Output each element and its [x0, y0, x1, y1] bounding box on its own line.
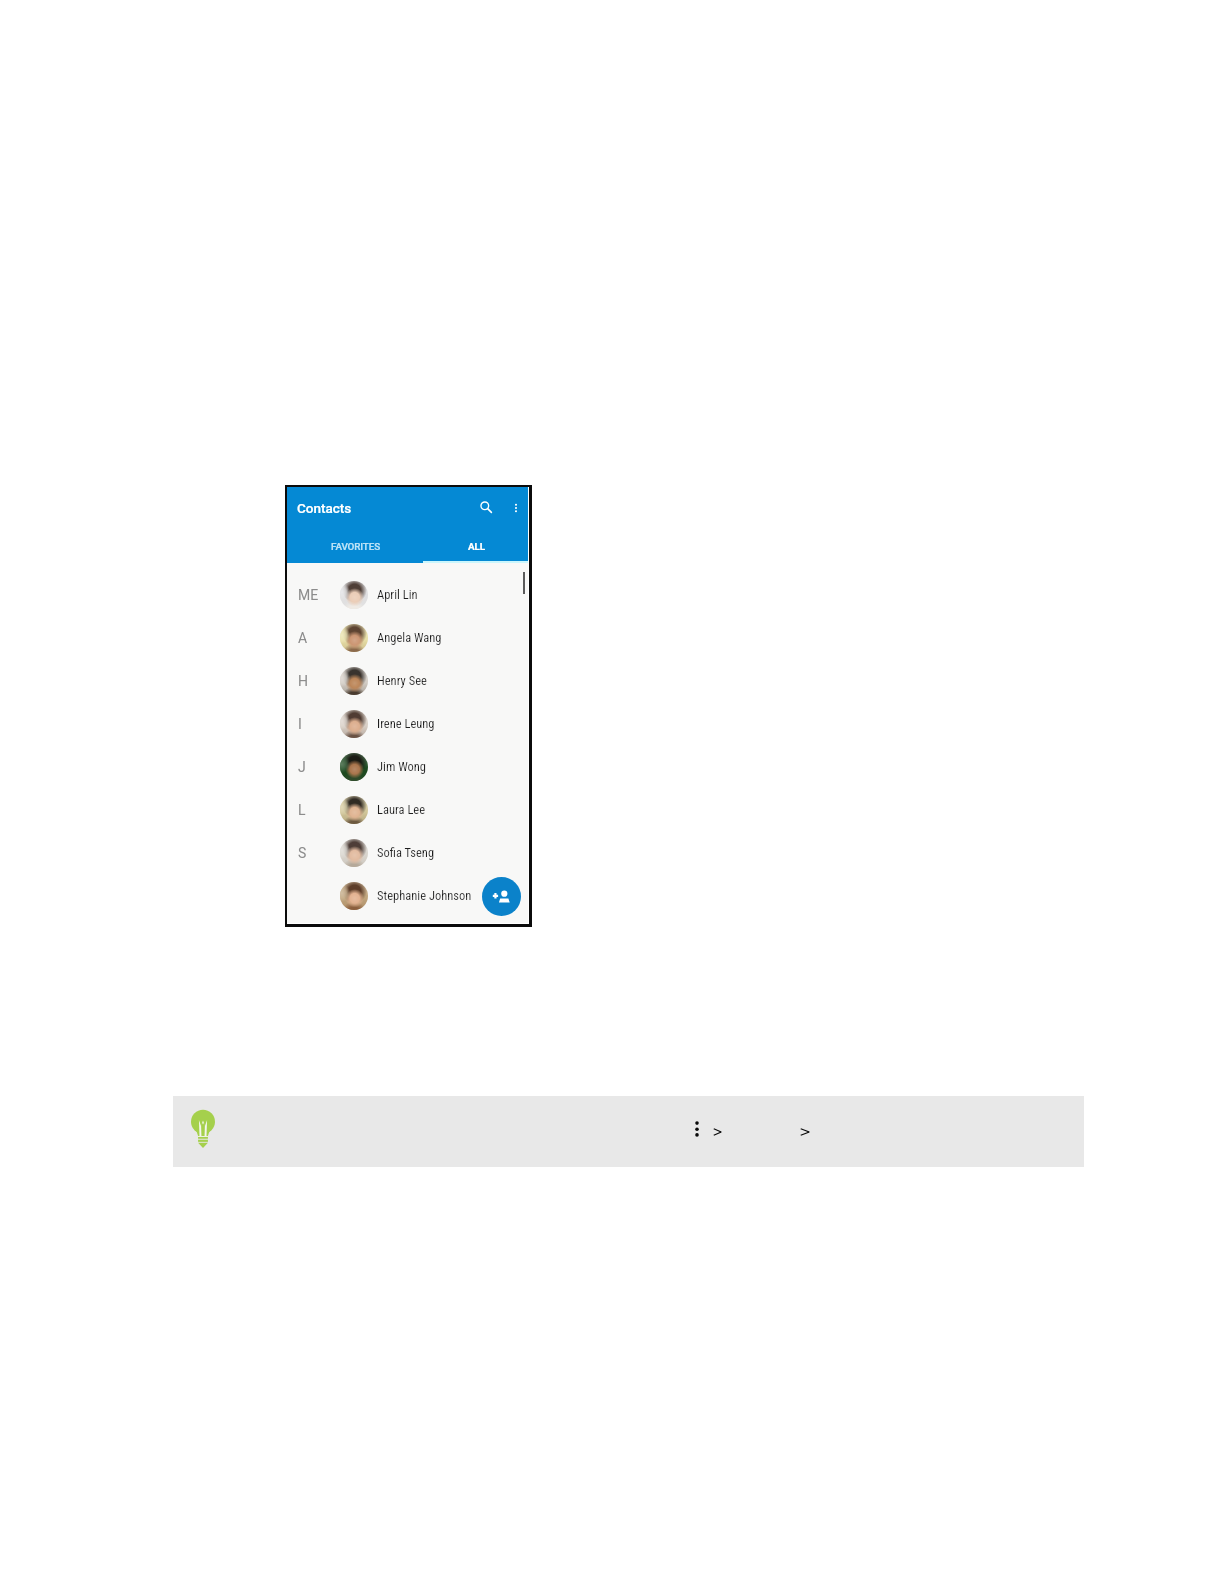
button[interactable]: A — [287, 616, 528, 659]
button[interactable]: J — [287, 745, 528, 788]
staticText: Stephanie Johnson — [377, 888, 472, 903]
staticText: ME — [298, 587, 319, 603]
staticText: Angela Wang — [377, 630, 442, 645]
staticText: Sofia Tseng — [377, 845, 435, 860]
button[interactable]: Search — [474, 495, 498, 519]
staticText: I — [298, 716, 302, 732]
button[interactable]: Stephanie Johnson — [287, 874, 528, 917]
button[interactable]: ALL — [425, 531, 528, 563]
staticText: J — [298, 759, 306, 775]
staticText: Jim Wong — [377, 759, 427, 774]
staticText: Henry See — [377, 673, 427, 688]
staticText: Contacts — [297, 500, 352, 516]
staticText: Laura Lee — [377, 802, 426, 817]
button[interactable]: More options — [504, 496, 528, 520]
button[interactable]: H — [287, 659, 528, 702]
staticText: Irene Leung — [377, 716, 435, 731]
button[interactable]: L — [287, 788, 528, 831]
staticText: A — [298, 630, 308, 646]
staticText: April Lin — [377, 587, 418, 602]
button[interactable]: FAVORITES — [287, 531, 425, 563]
staticText: L — [298, 802, 306, 818]
button[interactable]: I — [287, 702, 528, 745]
button[interactable]: Add contact — [482, 877, 521, 916]
staticText: ALL — [468, 541, 485, 553]
button[interactable]: ME — [287, 573, 528, 616]
button[interactable]: S — [287, 831, 528, 874]
staticText: FAVORITES — [331, 541, 381, 553]
staticText: H — [298, 673, 308, 689]
staticText: S — [298, 845, 307, 861]
